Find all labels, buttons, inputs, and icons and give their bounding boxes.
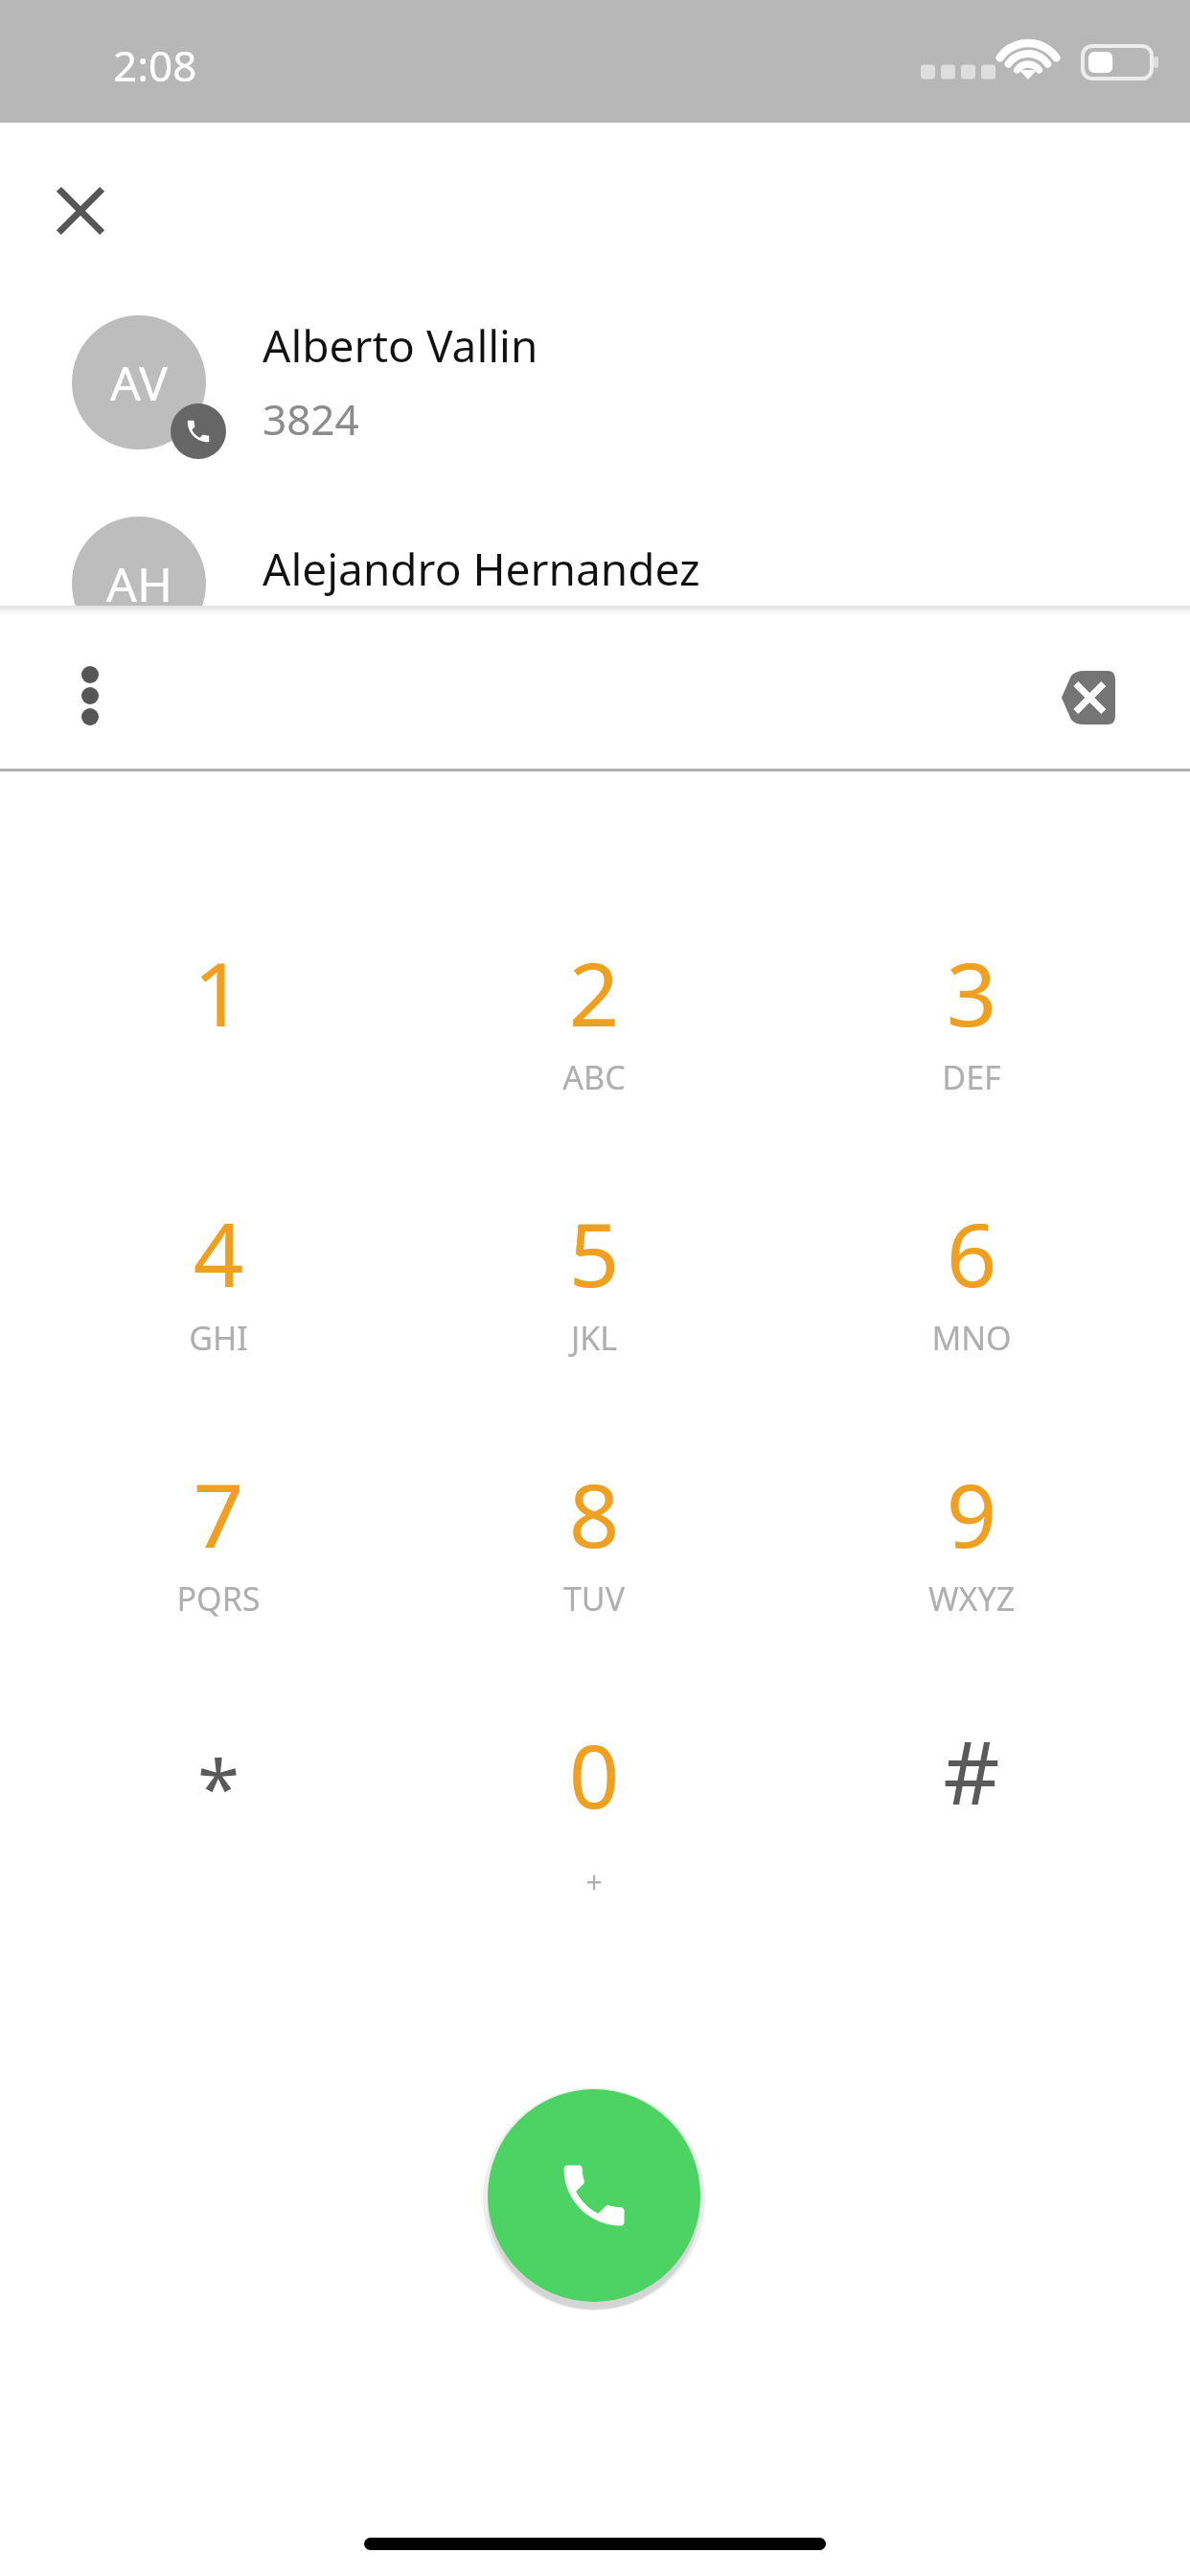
button[interactable]: * (65, 1709, 372, 1948)
button[interactable]: AH (0, 481, 1190, 682)
staticText: AH (106, 551, 172, 616)
button[interactable]: Backspace (1027, 644, 1134, 751)
staticText: Alberto Vallin (263, 315, 538, 376)
button[interactable]: 5 (441, 1187, 747, 1427)
staticText: 3824 (263, 390, 359, 448)
staticText: 1 (65, 932, 372, 1052)
button[interactable]: 6 (818, 1187, 1125, 1427)
staticText: # (818, 1711, 1125, 1830)
staticText: Alejandro Hernandez (263, 539, 700, 599)
button[interactable]: Close (34, 165, 126, 257)
staticText: 3 (818, 932, 1125, 1052)
staticText: MNO (818, 1316, 1125, 1360)
staticText: 0 (441, 1714, 747, 1834)
staticText: + (441, 1862, 747, 1901)
staticText: * (65, 1734, 372, 1838)
staticText: PQRS (65, 1576, 372, 1621)
button[interactable]: Call (488, 2089, 700, 2302)
staticText: 2 (441, 932, 747, 1052)
staticText: JKL (441, 1316, 747, 1360)
button[interactable]: # (818, 1709, 1125, 1948)
staticText: GHI (65, 1316, 372, 1360)
staticText: 7 (65, 1454, 372, 1574)
staticText: DEF (818, 1055, 1125, 1099)
staticText: 6 (818, 1193, 1125, 1313)
staticText: 5 (441, 1193, 747, 1313)
staticText: AV (110, 350, 168, 415)
staticText: ABC (441, 1055, 747, 1099)
button[interactable]: More options (44, 650, 136, 742)
button[interactable]: 8 (441, 1448, 747, 1688)
button[interactable]: 4 (65, 1187, 372, 1427)
staticText: 8 (441, 1454, 747, 1574)
button[interactable]: 2 (441, 927, 747, 1166)
staticText: 4 (65, 1193, 372, 1313)
button[interactable]: 3 (818, 927, 1125, 1166)
button[interactable]: 9 (818, 1448, 1125, 1688)
staticText: TUV (441, 1576, 747, 1621)
staticText: 9 (818, 1454, 1125, 1574)
button[interactable]: 7 (65, 1448, 372, 1688)
button[interactable]: AV (0, 280, 1190, 481)
staticText: WXYZ (818, 1576, 1125, 1621)
button[interactable]: 1 (65, 927, 372, 1166)
staticText: 2:08 (113, 36, 197, 94)
button[interactable]: 0 (441, 1709, 747, 1948)
